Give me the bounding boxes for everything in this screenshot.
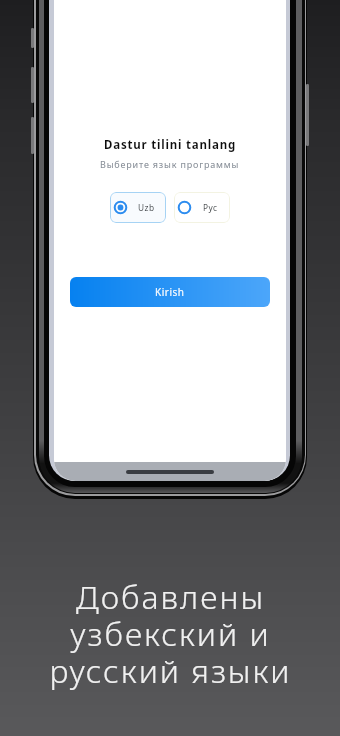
button[interactable]: Kirish: [70, 277, 270, 307]
staticText: Uzb: [138, 202, 155, 213]
staticText: Рус: [203, 202, 218, 213]
staticText: Kirish: [155, 285, 185, 299]
staticText: Добавлены узбекский и русский языки: [49, 575, 292, 693]
staticText: Выберите язык программы: [100, 158, 240, 170]
button[interactable]: Uzb: [110, 192, 166, 223]
staticText: Dastur tilini tanlang: [104, 137, 237, 153]
button[interactable]: Рус: [174, 192, 230, 223]
